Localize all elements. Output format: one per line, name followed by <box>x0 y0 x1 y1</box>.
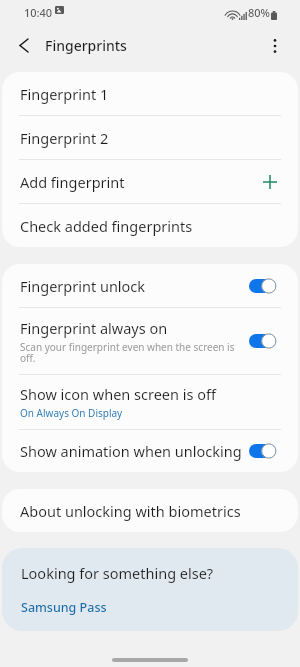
button[interactable]: Samsung Pass <box>21 599 107 616</box>
button[interactable]: Fingerprint unlock <box>2 264 298 307</box>
staticText: On Always On Display <box>20 406 123 420</box>
button[interactable]: Show icon when screen is off <box>2 375 298 429</box>
staticText: 80% <box>248 5 270 20</box>
staticText: Check added fingerprints <box>20 216 193 236</box>
staticText: Show icon when screen is off <box>20 384 216 404</box>
button[interactable]: More options <box>255 26 295 65</box>
staticText: Scan your fingerprint even when the scre… <box>20 340 239 365</box>
staticText: 10:40 <box>24 5 53 20</box>
staticText: Fingerprint always on <box>20 318 168 338</box>
staticText: Add fingerprint <box>20 172 125 192</box>
button[interactable]: About unlocking with biometrics <box>2 489 298 532</box>
staticText: Fingerprint 1 <box>20 84 109 104</box>
staticText: Fingerprint unlock <box>20 276 146 296</box>
staticText: Looking for something else? <box>21 563 214 583</box>
staticText: Show animation when unlocking <box>20 441 242 461</box>
button[interactable]: Navigate up <box>4 26 44 65</box>
button[interactable]: Add fingerprint <box>2 160 298 203</box>
button[interactable]: Show animation when unlocking <box>2 430 298 472</box>
button[interactable]: Fingerprint 2 <box>2 116 298 159</box>
button[interactable]: Fingerprint always on <box>2 308 298 374</box>
staticText: Fingerprints <box>45 36 127 55</box>
staticText: About unlocking with biometrics <box>20 501 241 521</box>
button[interactable]: Fingerprint 1 <box>2 72 298 115</box>
staticText: Fingerprint 2 <box>20 128 109 148</box>
button[interactable]: Check added fingerprints <box>2 204 298 247</box>
